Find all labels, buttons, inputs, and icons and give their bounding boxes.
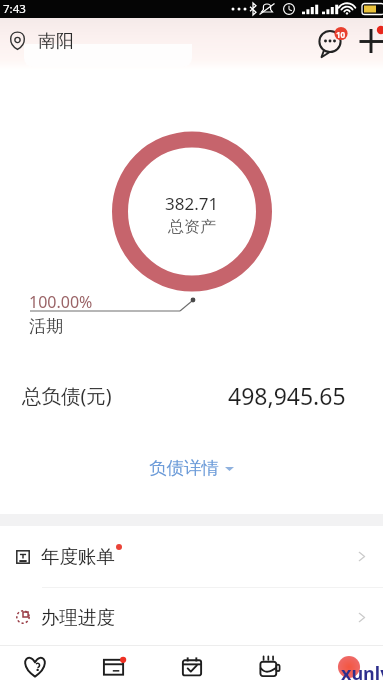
staticText: xunlv (341, 661, 383, 681)
staticText: 100.00% (29, 291, 93, 313)
staticText: 总负债(元) (22, 382, 112, 409)
staticText: 负债详情 (149, 457, 219, 479)
staticText: 10 (336, 29, 346, 40)
staticText: 南阳 (38, 30, 74, 53)
button[interactable]: Calendar (173, 651, 211, 681)
button[interactable]: 南阳 (8, 30, 74, 53)
staticText: 年度账单 (41, 545, 115, 568)
staticText: 活期 (29, 316, 63, 337)
button[interactable]: Favorites (16, 651, 54, 681)
button[interactable]: Messages (313, 26, 347, 56)
staticText: 办理进度 (41, 606, 115, 629)
button[interactable]: 办理进度 (0, 588, 383, 646)
staticText: 总资产 (168, 217, 216, 237)
staticText: 498,945.65 (228, 380, 346, 411)
button[interactable]: 负债详情 (139, 451, 244, 485)
staticText: 7:43 (3, 1, 26, 17)
button[interactable]: Cards (95, 651, 133, 681)
button[interactable]: 年度账单 (0, 526, 383, 587)
button[interactable]: Drinks (251, 651, 289, 681)
button[interactable]: Add (353, 26, 383, 56)
staticText: 382.71 (165, 192, 219, 215)
button[interactable]: Profile (330, 651, 368, 681)
